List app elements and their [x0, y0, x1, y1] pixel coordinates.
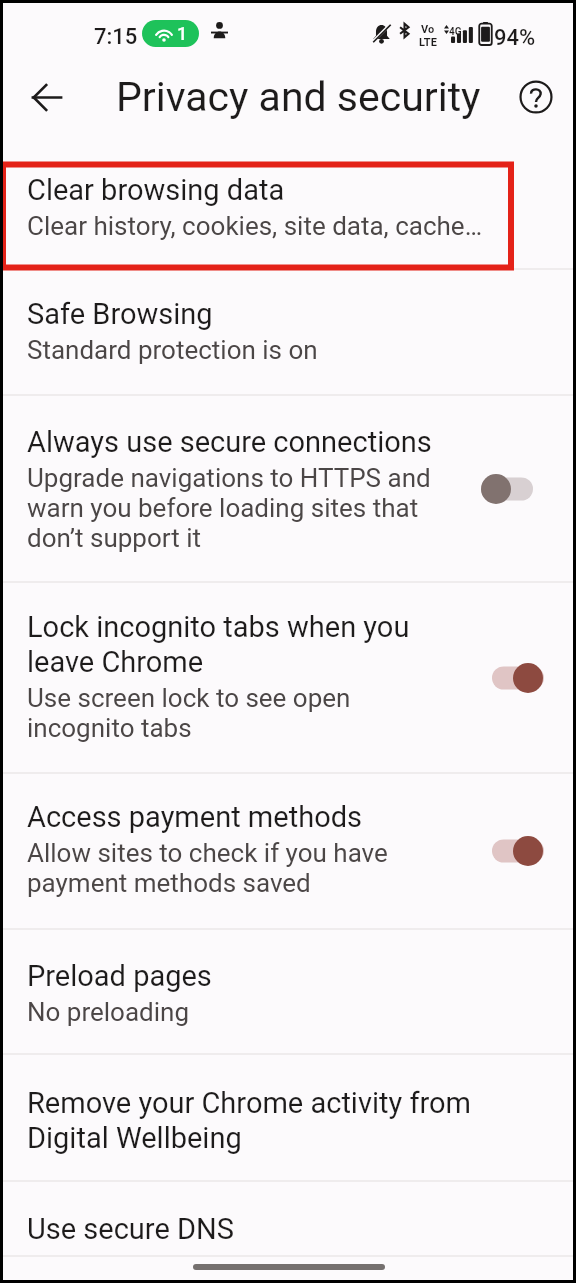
button[interactable]: Remove your Chrome activity from Digital…: [0, 1055, 576, 1180]
button[interactable]: Turn off: [459, 815, 554, 887]
staticText: Standard protection is on: [27, 335, 318, 365]
button[interactable]: Clear browsing data: [0, 160, 576, 268]
staticText: Clear browsing data: [27, 172, 285, 207]
staticText: Clear history, cookies, site data, cache…: [27, 211, 483, 241]
staticText: Privacy and security: [116, 73, 481, 121]
button[interactable]: Help: [509, 70, 563, 124]
staticText: Use secure DNS: [27, 1211, 234, 1246]
staticText: Preload pages: [27, 958, 212, 993]
button[interactable]: Access payment methods: [0, 774, 576, 928]
button[interactable]: Turn on: [459, 453, 554, 525]
button[interactable]: Back: [17, 68, 75, 126]
button[interactable]: Lock incognito tabs when you leave Chrom…: [0, 583, 576, 772]
staticText: 1: [177, 23, 188, 44]
staticText: Remove your Chrome activity from Digital…: [27, 1085, 545, 1155]
staticText: 4G: [449, 26, 462, 38]
staticText: Safe Browsing: [27, 296, 213, 331]
staticText: Upgrade navigations to HTTPS and warn yo…: [27, 463, 457, 553]
staticText: 7:15: [94, 24, 138, 50]
staticText: Access payment methods: [27, 799, 362, 834]
staticText: Allow sites to check if you have payment…: [27, 838, 457, 898]
staticText: Vo: [421, 23, 435, 36]
staticText: LTE: [419, 36, 437, 49]
other: Notification: [211, 22, 228, 39]
button[interactable]: Safe Browsing: [0, 270, 576, 394]
button[interactable]: Preload pages: [0, 930, 576, 1053]
staticText: Lock incognito tabs when you leave Chrom…: [27, 609, 457, 679]
staticText: No preloading: [27, 997, 190, 1027]
staticText: Always use secure connections: [27, 424, 432, 459]
button[interactable]: Always use secure connections: [0, 396, 576, 581]
staticText: Use screen lock to see open incognito ta…: [27, 683, 457, 743]
button[interactable]: Use secure DNS: [0, 1182, 576, 1255]
staticText: 94%: [494, 25, 536, 51]
button[interactable]: Turn off: [459, 642, 554, 714]
